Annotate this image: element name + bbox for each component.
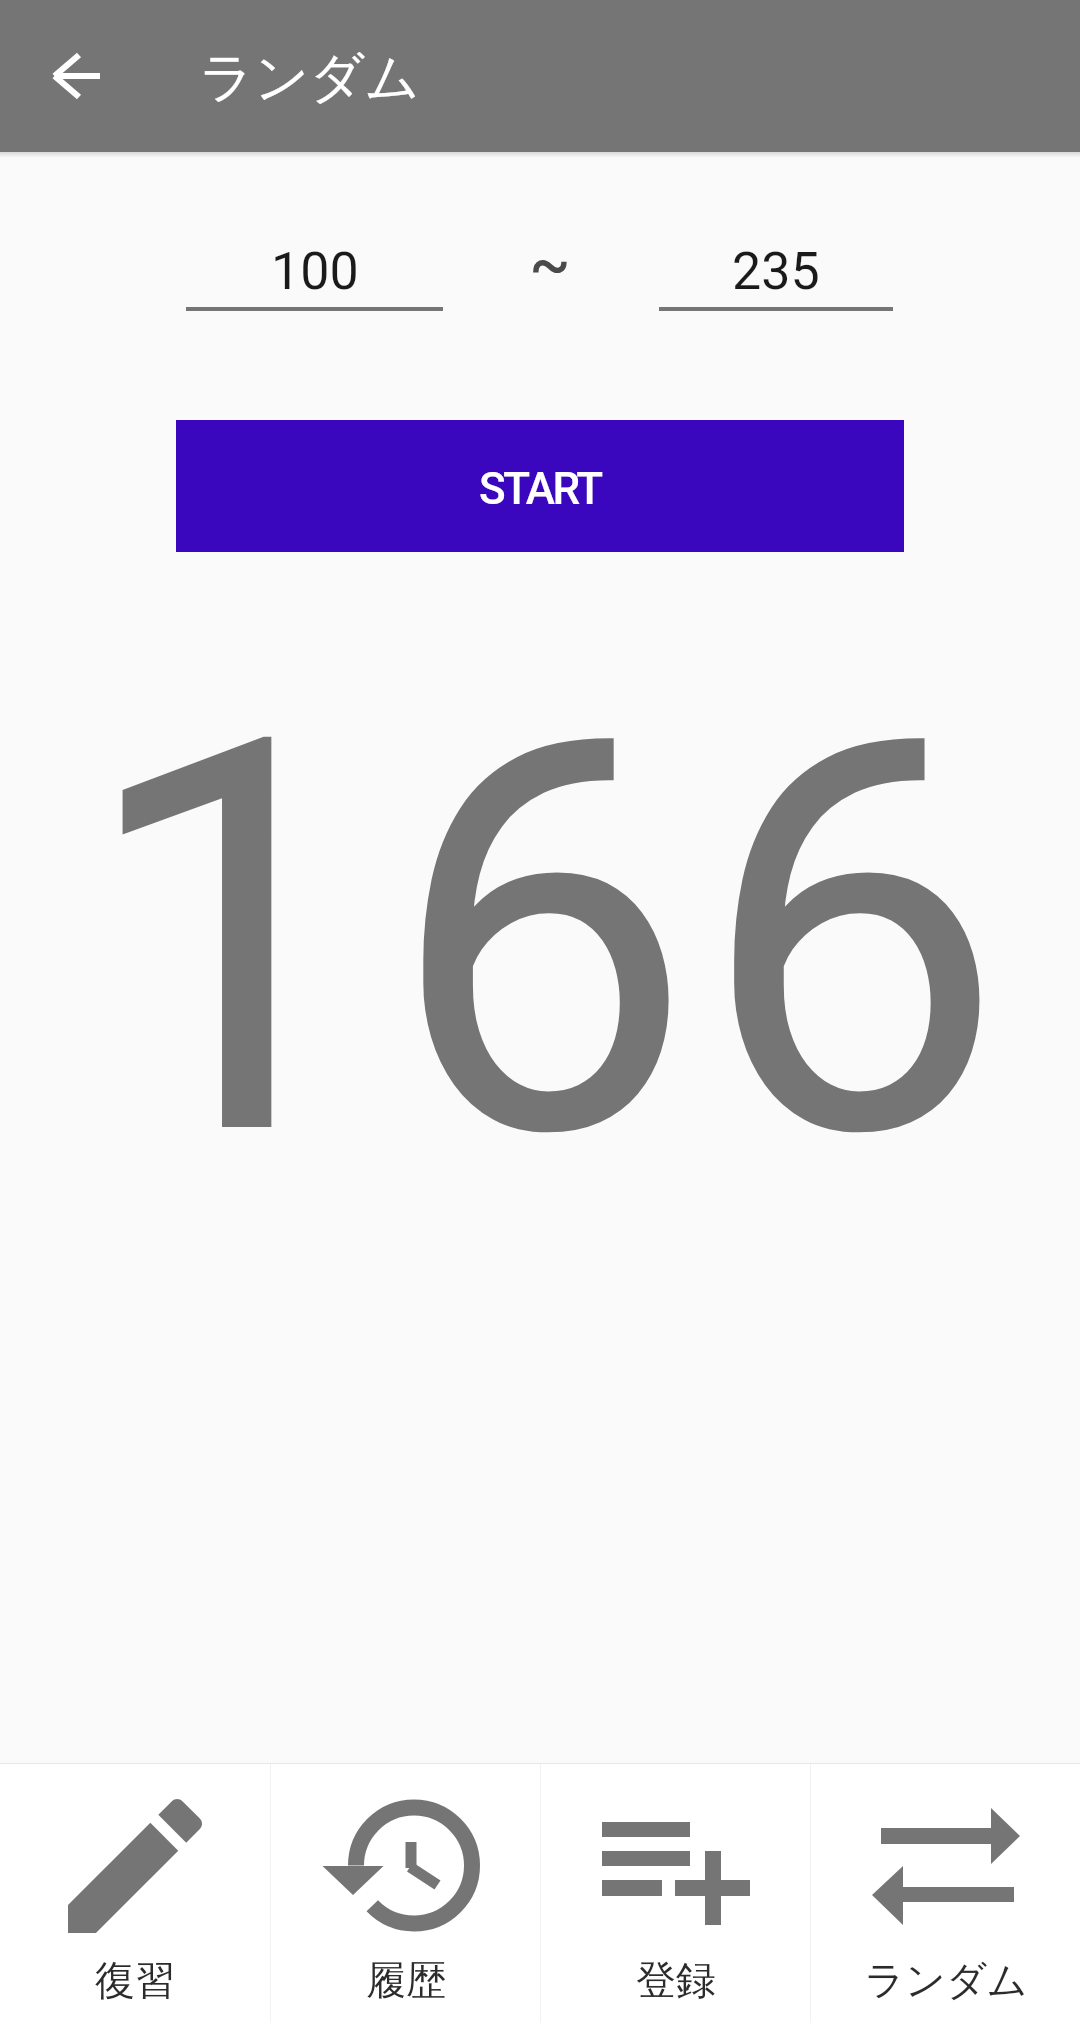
staticText: 166 — [77, 620, 1010, 1260]
staticText: ランダム — [864, 1955, 1028, 2005]
button[interactable]: 235 — [659, 241, 893, 311]
button[interactable]: 100 — [186, 241, 443, 311]
staticText: START — [479, 463, 601, 515]
button[interactable]: 履歴 — [271, 1764, 540, 2023]
staticText: 復習 — [95, 1955, 175, 2005]
staticText: 登録 — [636, 1955, 716, 2005]
button[interactable]: 復習 — [0, 1764, 270, 2023]
staticText: 履歴 — [366, 1955, 446, 2005]
button[interactable]: START — [176, 420, 904, 552]
button[interactable]: 登録 — [541, 1764, 810, 2023]
staticText: 235 — [732, 241, 820, 302]
staticText: ランダム — [199, 44, 421, 112]
button[interactable]: Back — [28, 28, 124, 124]
staticText: 100 — [271, 241, 359, 302]
button[interactable]: ランダム — [811, 1764, 1080, 2023]
